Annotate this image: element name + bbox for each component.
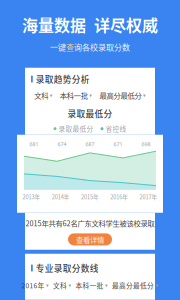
- staticText: ▾: [68, 282, 71, 288]
- staticText: 查: [66, 41, 74, 53]
- button[interactable]: 本科一批: [73, 280, 110, 290]
- staticText: 录取最低分: [58, 124, 93, 134]
- button[interactable]: 文科: [51, 280, 73, 290]
- button[interactable]: 文科: [32, 90, 55, 100]
- staticText: 本科一批: [60, 90, 88, 101]
- staticText: 2015年: [81, 193, 99, 201]
- button[interactable]: 本科一批: [58, 90, 94, 100]
- button[interactable]: 2016年: [19, 280, 51, 290]
- staticText: 文科: [53, 280, 67, 290]
- staticText: ▾: [155, 282, 158, 288]
- staticText: 681: [29, 141, 38, 148]
- staticText: 2016年: [21, 280, 44, 290]
- staticText: ▾: [143, 92, 146, 98]
- staticText: ▾: [50, 92, 53, 98]
- staticText: 2014年: [52, 193, 70, 201]
- staticText: 海量数据 详尽权威: [22, 13, 158, 36]
- staticText: 698: [141, 141, 150, 148]
- staticText: 2016年: [110, 193, 128, 201]
- staticText: 查看详情: [76, 234, 104, 245]
- staticText: 674: [57, 141, 66, 148]
- staticText: ▾: [105, 282, 108, 288]
- staticText: 询各校录取分数: [74, 41, 130, 53]
- staticText: 2013年: [23, 193, 41, 201]
- staticText: 2017年: [139, 193, 157, 201]
- staticText: 专业录取分数线: [36, 262, 99, 274]
- staticText: 录取最低分: [67, 107, 112, 120]
- staticText: 最高分最低分: [112, 280, 154, 290]
- staticText: 671: [113, 141, 122, 148]
- button[interactable]: 最高分最低分: [110, 280, 160, 290]
- staticText: ▾: [46, 282, 49, 288]
- staticText: 最高分最低分: [99, 90, 141, 101]
- button[interactable]: 查看详情: [68, 233, 112, 245]
- staticText: 录取趋势分析: [36, 73, 90, 85]
- staticText: 687: [85, 141, 94, 148]
- staticText: ▾: [89, 92, 92, 98]
- staticText: 2015年共有62名广东文科学生被该校录取: [25, 218, 154, 228]
- staticText: 本科一批: [75, 280, 103, 290]
- staticText: 文科: [34, 90, 48, 101]
- staticText: 一键: [50, 41, 66, 53]
- staticText: 省控线: [105, 124, 126, 134]
- button[interactable]: 最高分最低分: [97, 90, 148, 100]
